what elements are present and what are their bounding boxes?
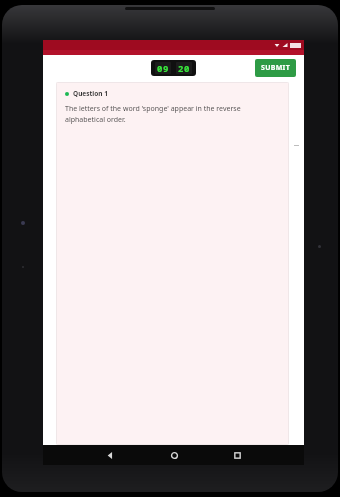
button[interactable]: Home (165, 446, 183, 464)
staticText: Question 1 (73, 89, 108, 98)
button[interactable]: 09 (151, 60, 196, 76)
staticText: SUBMIT (261, 63, 290, 73)
button[interactable]: Question 1 (56, 82, 289, 445)
staticText: The letters of the word 'sponge' appear … (65, 104, 280, 124)
button[interactable]: Recent apps (228, 446, 246, 464)
button[interactable]: SUBMIT (255, 59, 296, 77)
staticText: 20 (178, 62, 190, 74)
staticText: 09 (157, 62, 169, 74)
button[interactable]: Back (101, 446, 119, 464)
